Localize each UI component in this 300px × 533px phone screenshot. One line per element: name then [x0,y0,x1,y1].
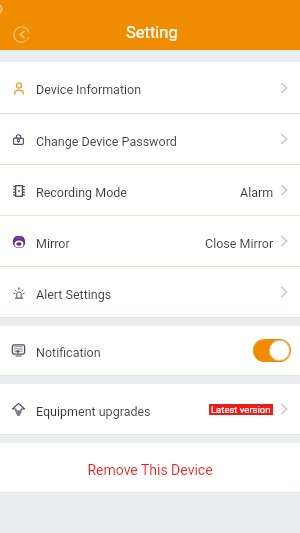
staticText: Equipment upgrades [36,404,151,419]
staticText: Setting [126,23,178,42]
button[interactable]: Mirror [0,216,300,266]
staticText: Alarm [240,185,274,200]
staticText: Notification [36,345,101,360]
button[interactable]: Change Device Password [0,114,300,164]
staticText: Latest version [211,404,271,415]
button[interactable]: Back [9,22,34,47]
staticText: Alert Settings [36,287,112,302]
staticText: Recording Mode [36,185,127,200]
button[interactable]: Recording Mode [0,165,300,215]
button[interactable]: Equipment upgrades [0,384,300,434]
button[interactable]: Notification [0,326,300,375]
staticText: Mirror [36,236,70,251]
staticText: Change Device Password [36,134,177,149]
staticText: Remove This Device [87,462,213,478]
button[interactable]: Notification toggle [253,339,291,362]
staticText: Close Mirror [205,236,274,251]
button[interactable]: Device Information [0,62,300,113]
staticText: Device Information [36,82,142,97]
button[interactable]: Alert Settings [0,267,300,317]
button[interactable]: Remove This Device [0,443,300,492]
